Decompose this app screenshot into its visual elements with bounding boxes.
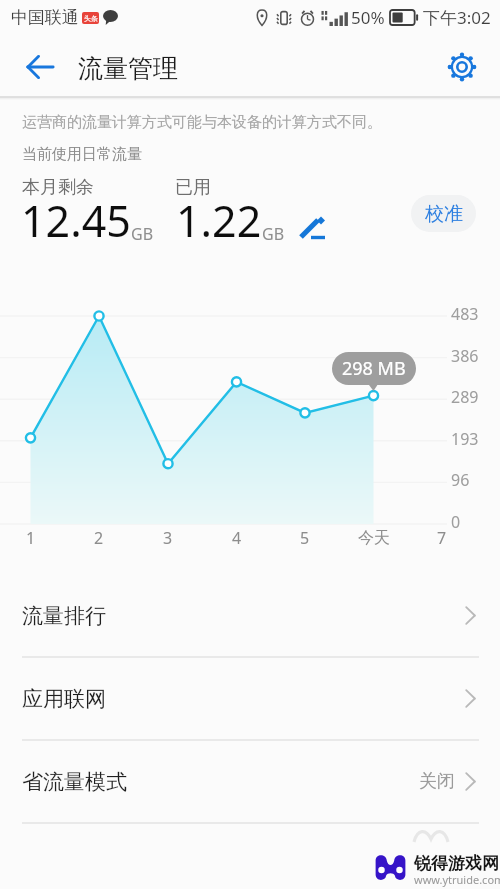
staticText: 运营商的流量计算方式可能与本设备的计算方式不同。 <box>22 113 382 132</box>
staticText: 校准 <box>425 202 463 226</box>
staticText: GB <box>131 223 154 245</box>
staticText: 已用 <box>175 176 211 199</box>
staticText: 5 <box>300 527 310 549</box>
staticText: 省流量模式 <box>22 769 127 795</box>
staticText: 关闭 <box>419 770 455 793</box>
button[interactable]: Settings <box>442 47 482 87</box>
button[interactable]: Back <box>18 45 62 89</box>
staticText: 0 <box>451 511 461 533</box>
button[interactable]: 流量排行 <box>0 575 500 658</box>
staticText: 锐得游戏网 <box>414 853 499 874</box>
staticText: 1 <box>26 527 36 549</box>
staticText: 今天 <box>358 528 390 548</box>
staticText: 当前使用日常流量 <box>22 145 142 164</box>
button[interactable]: 应用联网 <box>0 658 500 741</box>
staticText: 298 MB <box>342 356 406 381</box>
staticText: 483 <box>451 303 479 325</box>
staticText: www.ytruide.com <box>414 872 500 887</box>
staticText: 50% <box>351 6 385 29</box>
staticText: 12.45 <box>21 191 131 250</box>
staticText: GB <box>262 223 285 245</box>
staticText: 2 <box>94 527 104 549</box>
staticText: 1.22 <box>176 191 262 250</box>
staticText: 头条 <box>84 14 98 23</box>
staticText: 下午3:02 <box>423 6 491 29</box>
button[interactable]: 校准 <box>411 195 476 232</box>
staticText: 流量管理 <box>78 53 178 84</box>
staticText: 193 <box>451 428 479 450</box>
button[interactable]: 省流量模式 <box>0 741 500 824</box>
staticText: 289 <box>451 386 479 408</box>
staticText: 应用联网 <box>22 686 106 712</box>
staticText: 386 <box>451 345 479 367</box>
staticText: 3 <box>163 527 173 549</box>
staticText: 中国联通 <box>11 7 79 28</box>
staticText: 4 <box>232 527 242 549</box>
staticText: 流量排行 <box>22 603 106 629</box>
button[interactable]: Edit data plan <box>294 208 330 242</box>
staticText: 本月剩余 <box>22 176 94 199</box>
staticText: 7 <box>437 527 447 549</box>
staticText: 96 <box>451 469 470 491</box>
